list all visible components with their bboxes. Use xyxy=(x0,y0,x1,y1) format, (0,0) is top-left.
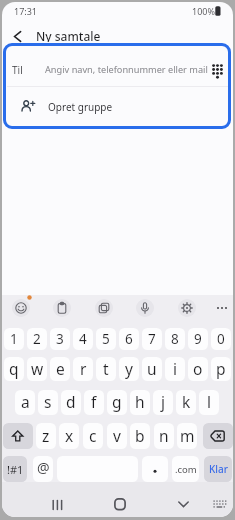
staticText: o xyxy=(193,358,203,379)
button[interactable] xyxy=(53,299,71,317)
button[interactable]: !#1 xyxy=(3,456,27,482)
staticText: z xyxy=(42,425,50,446)
button[interactable]: d xyxy=(61,390,81,415)
staticText: t xyxy=(103,358,109,379)
button[interactable] xyxy=(136,299,154,317)
staticText: Til xyxy=(12,63,23,77)
button[interactable]: l xyxy=(199,390,219,415)
staticText: h xyxy=(135,391,145,412)
button[interactable] xyxy=(8,27,28,45)
staticText: m xyxy=(180,425,195,446)
button[interactable]: o xyxy=(188,357,208,381)
staticText: .com xyxy=(175,463,197,476)
button[interactable] xyxy=(178,299,196,317)
button[interactable]: b xyxy=(130,423,150,449)
button[interactable]: @ xyxy=(33,456,53,482)
staticText: Ny samtale xyxy=(36,28,101,42)
staticText: d xyxy=(66,391,76,412)
staticText: 3 xyxy=(56,330,64,348)
button[interactable] xyxy=(142,456,168,482)
staticText: 5 xyxy=(102,330,110,348)
button[interactable] xyxy=(3,423,33,449)
button[interactable]: w xyxy=(27,357,47,381)
button[interactable]: 4 xyxy=(73,328,93,350)
button[interactable]: j xyxy=(153,390,173,415)
staticText: a xyxy=(21,391,30,412)
staticText: r xyxy=(80,358,87,379)
button[interactable]: x xyxy=(59,423,79,449)
button[interactable]: t xyxy=(96,357,116,381)
button[interactable]: h xyxy=(130,390,150,415)
staticText: 4 xyxy=(79,330,87,348)
button[interactable]: 7 xyxy=(142,328,162,350)
staticText: 17:31 xyxy=(14,5,38,17)
button[interactable]: 1 xyxy=(4,328,24,350)
button[interactable] xyxy=(208,62,226,79)
staticText: b xyxy=(135,425,145,446)
button[interactable]: 5 xyxy=(96,328,116,350)
button[interactable]: r xyxy=(73,357,93,381)
staticText: !#1 xyxy=(7,462,24,477)
button[interactable]: 8 xyxy=(165,328,185,350)
staticText: 2 xyxy=(33,330,41,348)
staticText: l xyxy=(207,391,211,412)
button[interactable]: c xyxy=(83,423,103,449)
staticText: Angiv navn, telefonnummer eller mail xyxy=(45,63,208,76)
button[interactable]: 6 xyxy=(119,328,139,350)
button[interactable]: 9 xyxy=(188,328,208,350)
staticText: 9 xyxy=(194,330,202,348)
button[interactable]: 3 xyxy=(50,328,70,350)
staticText: j xyxy=(161,391,165,412)
staticText: f xyxy=(91,391,97,412)
button[interactable] xyxy=(12,299,30,317)
button[interactable]: s xyxy=(38,390,58,415)
staticText: c xyxy=(89,425,97,446)
staticText: i xyxy=(173,358,177,379)
button[interactable]: e xyxy=(50,357,70,381)
button[interactable]: z xyxy=(36,423,56,449)
staticText: u xyxy=(147,358,157,379)
staticText: v xyxy=(113,425,121,446)
staticText: 8 xyxy=(171,330,179,348)
staticText: w xyxy=(31,358,44,379)
button[interactable]: v xyxy=(107,423,127,449)
button[interactable] xyxy=(211,498,228,510)
staticText: p xyxy=(216,358,226,379)
button[interactable] xyxy=(214,300,230,316)
button[interactable]: Til xyxy=(6,46,229,86)
button[interactable] xyxy=(46,494,68,516)
button[interactable]: 2 xyxy=(27,328,47,350)
button[interactable] xyxy=(203,423,233,449)
staticText: k xyxy=(182,391,191,412)
button[interactable]: q xyxy=(4,357,24,381)
button[interactable]: p xyxy=(211,357,231,381)
staticText: 100% xyxy=(192,5,215,17)
button[interactable]: Klar xyxy=(204,456,232,482)
button[interactable]: n xyxy=(154,423,174,449)
staticText: 1 xyxy=(10,330,18,348)
button[interactable]: u xyxy=(142,357,162,381)
button[interactable]: m xyxy=(177,423,197,449)
button[interactable] xyxy=(172,493,194,515)
button[interactable]: .com xyxy=(172,456,199,482)
button[interactable]: k xyxy=(176,390,196,415)
staticText: n xyxy=(159,425,169,446)
button[interactable] xyxy=(95,299,113,317)
button[interactable]: y xyxy=(119,357,139,381)
button[interactable]: i xyxy=(165,357,185,381)
staticText: y xyxy=(125,358,133,379)
staticText: s xyxy=(44,391,52,412)
staticText: Opret gruppe xyxy=(48,100,113,114)
staticText: Klar xyxy=(209,462,228,476)
staticText: 0 xyxy=(217,330,225,348)
staticText: q xyxy=(9,358,19,379)
button[interactable]: f xyxy=(84,390,104,415)
button[interactable]: a xyxy=(15,390,35,415)
button[interactable]: g xyxy=(107,390,127,415)
staticText: e xyxy=(56,358,65,379)
staticText: 7 xyxy=(148,330,156,348)
button[interactable]: 0 xyxy=(211,328,231,350)
button[interactable] xyxy=(109,493,131,515)
button[interactable]: Opret gruppe xyxy=(6,87,229,127)
